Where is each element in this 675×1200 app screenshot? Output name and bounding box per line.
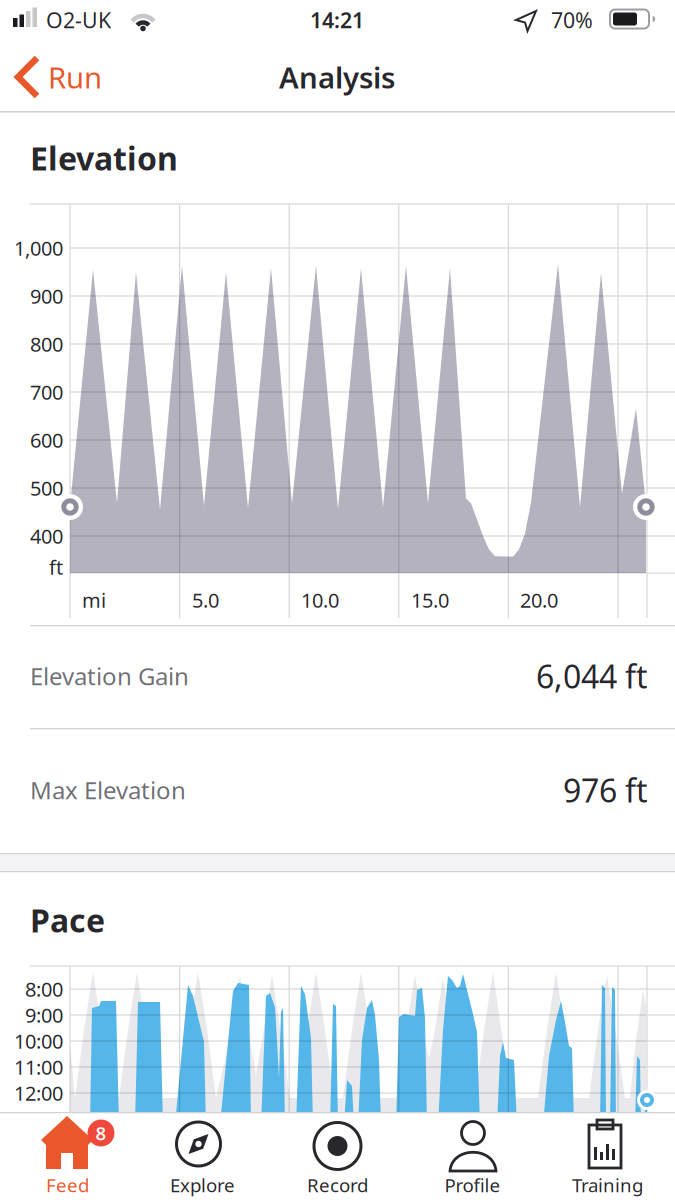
button[interactable]: Record <box>0 0 135 88</box>
staticText: O2-UK <box>46 6 111 34</box>
staticText: 5.0 <box>192 587 219 613</box>
staticText: mi <box>82 587 106 613</box>
button[interactable]: Explore <box>0 0 135 88</box>
staticText: 700 <box>30 379 63 405</box>
staticText: Analysis <box>279 57 395 96</box>
staticText: 800 <box>30 331 63 357</box>
staticText: 10.0 <box>301 587 339 613</box>
staticText: 15.0 <box>411 587 449 613</box>
staticText: Elevation <box>30 137 178 179</box>
button[interactable]: 8 <box>0 0 135 88</box>
staticText: 8 <box>95 1121 106 1145</box>
staticText: Explore <box>170 1173 235 1197</box>
staticText: Max Elevation <box>30 774 186 806</box>
staticText: 20.0 <box>520 587 558 613</box>
staticText: 400 <box>30 523 63 549</box>
staticText: 10:00 <box>14 1028 63 1054</box>
staticText: 14:21 <box>310 6 364 34</box>
staticText: Record <box>307 1173 368 1197</box>
staticText: 6,044 ft <box>536 655 648 697</box>
staticText: 9:00 <box>25 1002 63 1028</box>
staticText: Feed <box>46 1173 89 1197</box>
staticText: 1,000 <box>14 235 63 261</box>
staticText: 8:00 <box>25 976 63 1002</box>
staticText: Profile <box>444 1173 500 1197</box>
staticText: Pace <box>30 899 105 941</box>
staticText: 900 <box>30 283 63 309</box>
button[interactable]: Training <box>0 0 135 88</box>
staticText: Run <box>48 57 102 96</box>
staticText: 70% <box>551 6 593 34</box>
button[interactable]: Back <box>0 0 130 112</box>
staticText: Training <box>572 1173 643 1197</box>
staticText: 11:00 <box>14 1054 63 1080</box>
staticText: Elevation Gain <box>30 660 189 692</box>
button[interactable]: Profile <box>0 0 135 88</box>
staticText: ft <box>49 554 63 580</box>
staticText: 500 <box>30 475 63 501</box>
staticText: 976 ft <box>563 769 648 811</box>
staticText: 12:00 <box>14 1080 63 1106</box>
staticText: 600 <box>30 427 63 453</box>
